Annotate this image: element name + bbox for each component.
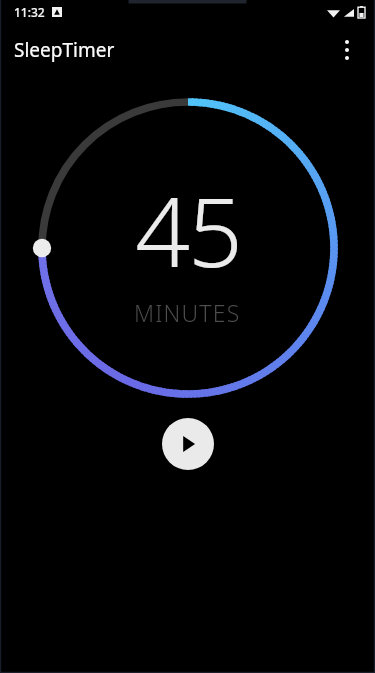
button[interactable]: More options xyxy=(325,28,369,72)
button[interactable]: Sleep timer duration 45 minutes xyxy=(38,98,338,398)
staticText: 45 xyxy=(135,164,241,295)
staticText: MINUTES xyxy=(134,297,241,328)
button[interactable]: Start timer xyxy=(162,418,214,470)
staticText: SleepTimer xyxy=(14,37,115,63)
staticText: 11:32 xyxy=(14,4,45,20)
